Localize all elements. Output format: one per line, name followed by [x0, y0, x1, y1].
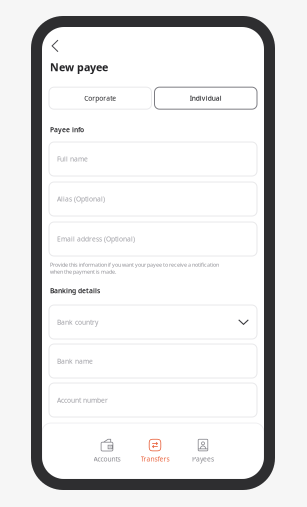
- staticText: Full name: [57, 155, 88, 163]
- button[interactable]: Corporate: [49, 87, 151, 109]
- button[interactable]: Payees: [186, 439, 220, 463]
- staticText: Corporate: [84, 94, 116, 103]
- button[interactable]: Bank country: [49, 305, 257, 339]
- staticText: Bank country: [57, 318, 98, 326]
- button[interactable]: Individual: [154, 87, 257, 109]
- button[interactable]: Bank name: [49, 344, 257, 378]
- staticText: New payee: [50, 60, 108, 74]
- button[interactable]: Transfers: [138, 439, 172, 463]
- button[interactable]: Full name: [49, 142, 257, 176]
- staticText: Payee info: [50, 125, 84, 134]
- button[interactable]: Back: [46, 38, 64, 54]
- button[interactable]: Accounts: [90, 439, 124, 463]
- staticText: Email address (Optional): [57, 235, 135, 243]
- staticText: Alias (Optional): [57, 195, 105, 203]
- staticText: Account number: [57, 396, 108, 404]
- staticText: Payees: [192, 455, 214, 463]
- staticText: Provide this information if you want you…: [50, 261, 219, 275]
- staticText: Transfers: [140, 455, 169, 463]
- staticText: Bank name: [57, 357, 93, 365]
- button[interactable]: Email address (Optional): [49, 222, 257, 256]
- staticText: Banking details: [50, 286, 100, 295]
- staticText: Individual: [190, 94, 222, 103]
- button[interactable]: Account number: [49, 383, 257, 417]
- staticText: Accounts: [93, 455, 120, 463]
- button[interactable]: Alias (Optional): [49, 182, 257, 216]
